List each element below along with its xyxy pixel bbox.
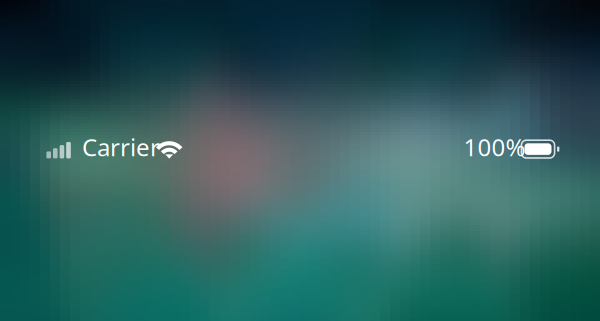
- staticText: 100%: [463, 131, 525, 163]
- staticText: Carrier: [82, 131, 160, 163]
